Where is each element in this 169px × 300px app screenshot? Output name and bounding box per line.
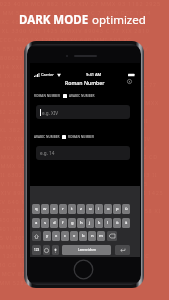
button[interactable]: d: [50, 218, 58, 228]
button[interactable]: q: [32, 204, 40, 214]
button[interactable]: Dictate: [52, 245, 59, 255]
staticText: IV 8120 XXX 551 MCM 424558 XI 2930 CD 18…: [0, 99, 159, 108]
staticText: Roman Number: [65, 79, 105, 86]
button[interactable]: Leerzeichen: [62, 245, 111, 255]
staticText: ö: [116, 220, 119, 226]
staticText: l: [107, 220, 109, 226]
staticText: t: [71, 206, 73, 212]
button[interactable]: r: [59, 204, 67, 214]
button[interactable]: v: [70, 231, 78, 241]
staticText: d: [53, 220, 56, 226]
staticText: 88 MCMXC 46 2025 VI 305 XXV 1182 99 LXL …: [0, 18, 143, 27]
staticText: ä: [125, 220, 128, 226]
button[interactable]: e.g. XIV: [36, 105, 130, 119]
button[interactable]: g: [68, 218, 76, 228]
staticText: k: [98, 220, 101, 226]
button[interactable]: a: [32, 218, 40, 228]
staticText: e.g. 14: [40, 150, 55, 156]
staticText: e.g. XIV: [42, 110, 59, 116]
staticText: e: [53, 206, 56, 212]
staticText: 8 XI 2930 CD 187 MMXX 65 IV 8120 XXX 551…: [0, 261, 145, 270]
staticText: ROMAN NUMBER: [34, 94, 61, 98]
button[interactable]: Backspace: [107, 231, 117, 241]
button[interactable]: 123: [32, 245, 41, 255]
button[interactable]: n: [88, 231, 96, 241]
staticText: X 2810 MD 614 XL 3300 VIII 1425 MMXIV 89…: [0, 81, 158, 90]
staticText: III 27 DCCC 4460 LX 1201828 XV 640 MMI 5…: [0, 36, 144, 45]
button[interactable]: f: [59, 218, 67, 228]
button[interactable]: y: [43, 231, 51, 241]
button[interactable]: h: [77, 218, 85, 228]
button[interactable]: i: [95, 204, 103, 214]
staticText: 2925 IV806023 4010 MCV 882 1450 XIV 27 M…: [0, 54, 145, 63]
button[interactable]: Return: [115, 245, 130, 255]
staticText: ü: [125, 206, 128, 212]
button[interactable]: Emoji: [43, 245, 50, 255]
staticText: 3 C 77 XIX 2810 MD 614 XL 3300 VIII 1425…: [0, 135, 161, 144]
staticText: h: [80, 220, 83, 226]
staticText: j: [89, 220, 91, 226]
button[interactable]: w: [41, 204, 49, 214]
button[interactable]: ö: [113, 218, 121, 228]
button[interactable]: ARABIC NUMBER: [34, 134, 95, 140]
button[interactable]: x: [52, 231, 60, 241]
button[interactable]: ROMAN NUMBER: [34, 93, 95, 99]
staticText: q: [35, 206, 38, 212]
staticText: 2025 VI 305 XXV 1182 99 LXL 382 1540 IX …: [0, 234, 155, 243]
staticText: o: [107, 206, 110, 212]
staticText: XC 9912 III 27 DCCC 4460 LX 1201828 XV 6…: [0, 90, 147, 99]
staticText: IV 27 MMX 93 1182 2925 IV806023 4010 MCV…: [0, 162, 151, 171]
staticText: n: [91, 233, 94, 239]
staticText: 05 XXV 1182 99 LXL 382 1540 IX 88 MCMXC …: [0, 180, 152, 189]
staticText: r: [62, 206, 64, 212]
staticText: i: [98, 206, 100, 212]
button[interactable]: u: [86, 204, 94, 214]
staticText: g: [71, 220, 74, 226]
button[interactable]: k: [95, 218, 103, 228]
staticText: b: [82, 233, 85, 239]
staticText: a: [35, 220, 38, 226]
button[interactable]: p: [113, 204, 121, 214]
button[interactable]: b: [79, 231, 87, 241]
button[interactable]: t: [68, 204, 76, 214]
staticText: 123: [34, 248, 40, 252]
staticText: s: [44, 220, 47, 226]
staticText: 82 1540 IX 88 MCMXC 46 2025 VI 305 XXV 1…: [0, 72, 146, 81]
staticText: 2 99 LXL 382 1540 IX 88 MCMXC 46 2025 VI…: [0, 126, 149, 135]
staticText: x: [55, 233, 58, 239]
staticText: MMXX 65 IV 8120 XXX 551 MCM 424558 XI 29…: [0, 153, 162, 162]
staticText: DARK MODE: [19, 12, 92, 28]
button[interactable]: e: [50, 204, 58, 214]
staticText: 283 II 4401 VII 6302 XC 7 1920 DCC 1914 …: [0, 225, 143, 234]
button[interactable]: Info: [124, 76, 135, 87]
staticText: z: [80, 206, 82, 212]
staticText: 0 LX 1201828 XV 640 MMI 503 XC 9912 III …: [0, 252, 156, 261]
staticText: m: [99, 233, 103, 239]
button[interactable]: e.g. 14: [36, 146, 130, 160]
button[interactable]: ä: [122, 218, 130, 228]
staticText: 0 CD 187 MMXX 65 IV 8120 XXX 551 MCM 424…: [0, 207, 165, 216]
staticText: XXX 551 MCM 424558 XI 2930 CD 187 MMXX 6…: [0, 45, 156, 54]
staticText: 82 1450 XIV 27 MMX 93 1182 2925 IV806023…: [0, 216, 154, 225]
button[interactable]: m: [97, 231, 105, 241]
button[interactable]: ü: [122, 204, 130, 214]
button[interactable]: o: [104, 204, 112, 214]
button[interactable]: c: [61, 231, 69, 241]
staticText: y: [46, 233, 49, 239]
button[interactable]: Shift: [32, 231, 41, 241]
staticText: MXIV 89043 C 77 XIX 2810 MD 614 XL 3300 …: [0, 189, 164, 198]
staticText: 010 MCV 882 1450 XIV 27 MMX 93 1182 2925…: [0, 270, 157, 279]
staticText: C 7 1920 DCC 1914 XXI 9071 MM 5283 II 44…: [0, 117, 160, 126]
button[interactable]: l: [104, 218, 112, 228]
staticText: w: [43, 206, 47, 212]
button[interactable]: z: [77, 204, 85, 214]
button[interactable]: j: [86, 218, 94, 228]
staticText: VII 6302 XC 7 1920 DCC 1914 XXI 9071 MM …: [0, 171, 163, 180]
staticText: I 9071 MM 5283 II 4401 VII 6302 XC 7 192…: [0, 279, 146, 288]
staticText: f: [62, 220, 64, 226]
button[interactable]: s: [41, 218, 49, 228]
staticText: 93 1182 2925 IV806023 4010 MCV 882 1450 …: [0, 108, 148, 117]
staticText: v: [73, 233, 76, 239]
